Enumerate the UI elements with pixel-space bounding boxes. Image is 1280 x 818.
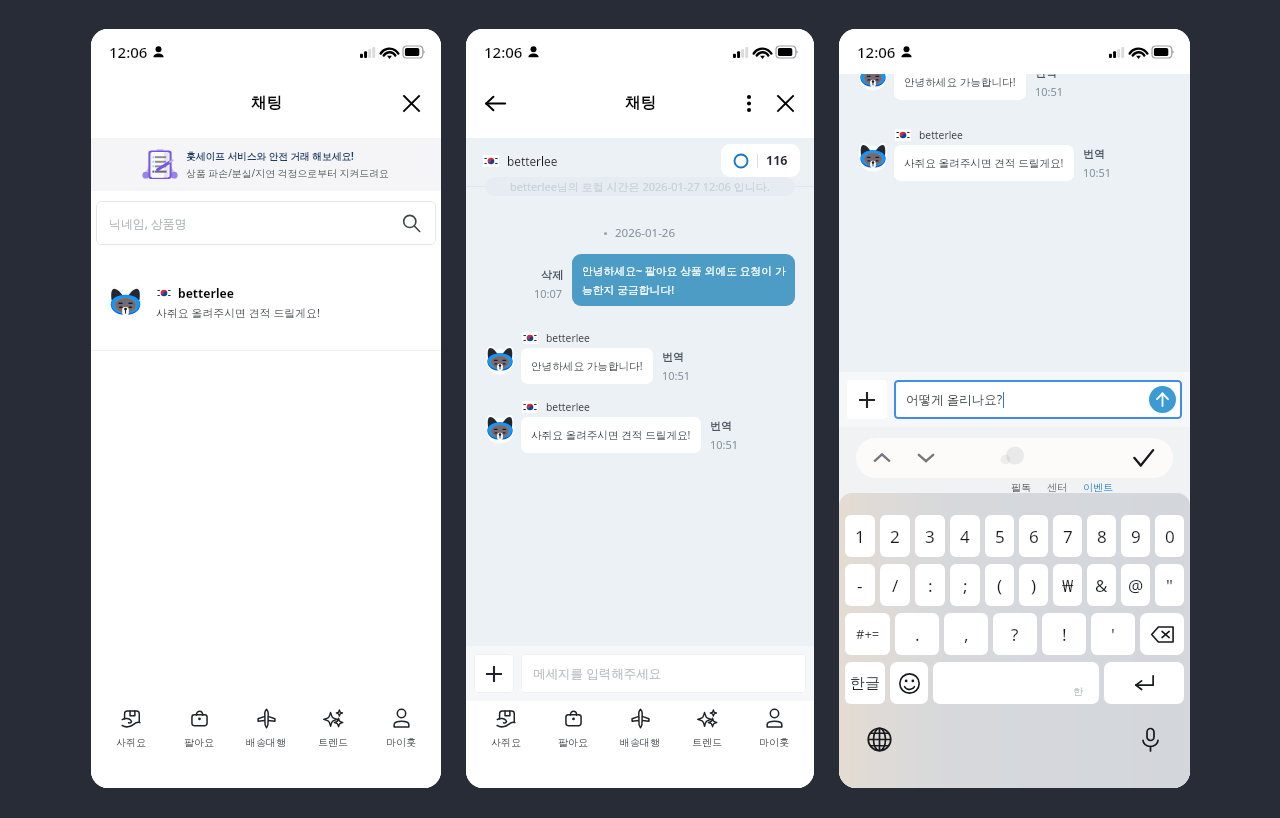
- staticText: !: [1062, 623, 1067, 646]
- staticText: 116: [766, 152, 788, 169]
- staticText: 트렌드: [318, 736, 348, 749]
- button[interactable]: More options: [735, 89, 763, 117]
- staticText: betterlee: [546, 331, 590, 345]
- button[interactable]: 안녕하세요~ 팔아요 상품 외에도 요청이 가능한지 궁금합니다!: [572, 254, 795, 306]
- staticText: 12:06: [857, 42, 896, 62]
- button[interactable]: 어떻게 올리나요?: [894, 380, 1182, 419]
- staticText: betterlee님의 로컬 시간은 2026-01-27 12:06 입니다.: [510, 179, 770, 194]
- button[interactable]: 안녕하세요 가능합니다!: [521, 348, 653, 384]
- button[interactable]: 훗세이프 서비스와 안전 거래 해보세요!: [91, 138, 441, 191]
- button[interactable]: 배송대행: [237, 707, 295, 750]
- button[interactable]: 5: [985, 515, 1014, 557]
- button[interactable]: 116: [721, 144, 800, 177]
- staticText: 10:07: [534, 286, 563, 301]
- button[interactable]: 3: [915, 515, 945, 557]
- staticText: 사쥐요 올려주시면 견적 드릴게요!: [531, 428, 691, 442]
- staticText: 어떻게 올리나요?: [906, 391, 1003, 408]
- button[interactable]: 1: [845, 515, 875, 557]
- button[interactable]: 8: [1087, 515, 1116, 557]
- staticText: 팔아요: [184, 736, 214, 749]
- button[interactable]: 사쥐요 올려주시면 견적 드릴게요!: [521, 417, 701, 453]
- button[interactable]: 사쥐요: [102, 707, 160, 750]
- button[interactable]: 팔아요: [544, 707, 602, 750]
- button[interactable]: 2: [880, 515, 910, 557]
- button[interactable]: @: [1121, 564, 1150, 606]
- button[interactable]: betterlee: [91, 285, 441, 350]
- button[interactable]: &: [1087, 564, 1116, 606]
- button[interactable]: Close: [394, 86, 428, 120]
- button[interactable]: #+=: [845, 613, 890, 655]
- button[interactable]: 사쥐요 올려주시면 견적 드릴게요!: [894, 145, 1074, 181]
- button[interactable]: 한글: [845, 662, 885, 704]
- staticText: #+=: [856, 625, 880, 643]
- staticText: 이벤트: [1083, 481, 1113, 494]
- staticText: 0: [1165, 525, 1175, 548]
- button[interactable]: Attach: [474, 654, 514, 693]
- button[interactable]: Send: [1149, 386, 1176, 413]
- button[interactable]: 배송대행: [611, 707, 669, 750]
- button[interactable]: ": [1155, 564, 1184, 606]
- button[interactable]: 메세지를 입력해주세요: [521, 654, 806, 693]
- button[interactable]: Done: [1129, 444, 1157, 472]
- button[interactable]: ?: [993, 613, 1037, 655]
- button[interactable]: Enter: [1104, 662, 1184, 704]
- button[interactable]: 4: [950, 515, 980, 557]
- button[interactable]: 마이훗: [372, 707, 430, 750]
- button[interactable]: Back: [478, 86, 512, 120]
- staticText: ): [1031, 574, 1037, 597]
- staticText: 사쥐요: [491, 736, 521, 749]
- button[interactable]: Space: [933, 662, 1099, 704]
- staticText: 채팅: [251, 93, 282, 113]
- button[interactable]: -: [845, 564, 875, 606]
- button[interactable]: Previous field: [868, 444, 896, 472]
- staticText: 10:51: [662, 368, 691, 383]
- button[interactable]: ): [1019, 564, 1048, 606]
- button[interactable]: 9: [1121, 515, 1150, 557]
- staticText: 팔아요: [558, 736, 588, 749]
- staticText: 9: [1131, 525, 1141, 548]
- button[interactable]: 팔아요: [170, 707, 228, 750]
- staticText: 센터: [1047, 481, 1067, 494]
- staticText: betterlee: [546, 400, 590, 414]
- button[interactable]: ,: [944, 613, 988, 655]
- button[interactable]: /: [880, 564, 910, 606]
- staticText: 1: [855, 525, 865, 548]
- button[interactable]: ;: [950, 564, 980, 606]
- button[interactable]: Backspace: [1140, 613, 1184, 655]
- button[interactable]: Next field: [912, 444, 940, 472]
- button[interactable]: 안녕하세요 가능합니다!: [894, 74, 1026, 100]
- button[interactable]: Voice input: [1134, 723, 1166, 755]
- button[interactable]: 닉네임, 상품명: [96, 201, 436, 245]
- button[interactable]: 트렌드: [304, 707, 362, 750]
- button[interactable]: 0: [1155, 515, 1184, 557]
- staticText: 10:51: [1035, 84, 1064, 99]
- staticText: ': [1111, 623, 1115, 646]
- button[interactable]: 7: [1053, 515, 1082, 557]
- staticText: 4: [960, 525, 970, 548]
- staticText: 3: [925, 525, 935, 548]
- button[interactable]: 사쥐요: [477, 707, 535, 750]
- button[interactable]: Close: [769, 87, 801, 119]
- button[interactable]: (: [985, 564, 1014, 606]
- button[interactable]: :: [915, 564, 945, 606]
- button[interactable]: Emoji: [890, 662, 928, 704]
- staticText: 안녕하세요~ 팔아요 상품 외에도 요청이 가능한지 궁금합니다!: [582, 263, 789, 297]
- button[interactable]: 6: [1019, 515, 1048, 557]
- staticText: ": [1166, 574, 1173, 597]
- staticText: 한글: [850, 674, 880, 693]
- staticText: 삭제: [541, 268, 563, 282]
- button[interactable]: ': [1091, 613, 1135, 655]
- staticText: 한: [1073, 685, 1083, 698]
- staticText: &: [1095, 574, 1108, 597]
- staticText: 훗세이프 서비스와 안전 거래 해보세요!: [186, 150, 354, 163]
- button[interactable]: 마이훗: [745, 707, 803, 750]
- button[interactable]: 트렌드: [678, 707, 736, 750]
- staticText: ,: [964, 623, 969, 646]
- staticText: 배송대행: [620, 736, 660, 749]
- staticText: 닉네임, 상품명: [109, 215, 187, 231]
- button[interactable]: .: [895, 613, 939, 655]
- button[interactable]: !: [1042, 613, 1086, 655]
- button[interactable]: Attach: [847, 380, 887, 419]
- button[interactable]: ₩: [1053, 564, 1082, 606]
- button[interactable]: Change language: [863, 723, 895, 755]
